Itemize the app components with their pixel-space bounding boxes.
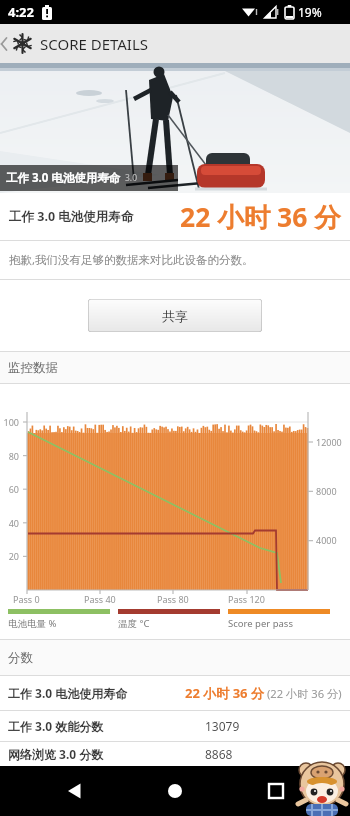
staticText: 共享	[162, 308, 188, 324]
button[interactable]: 工作 3.0 电池使用寿命	[8, 676, 342, 710]
staticText: 22 小时 36 分	[180, 199, 341, 235]
staticText: 温度 °C	[118, 617, 150, 630]
staticText: 工作 3.0 效能分数	[8, 718, 205, 734]
button[interactable]: 共享	[88, 299, 262, 332]
staticText: Pass 40	[84, 593, 116, 605]
staticText: 80	[0, 450, 19, 462]
staticText: 8868	[205, 746, 233, 762]
staticText: Pass 120	[228, 593, 265, 605]
staticText: 4:22	[8, 3, 34, 21]
button[interactable]: 网络浏览 3.0 分数	[8, 742, 342, 765]
staticText: 电池电量 %	[8, 617, 57, 630]
staticText: 60	[0, 483, 19, 495]
staticText: 抱歉,我们没有足够的数据来对比此设备的分数。	[9, 252, 254, 268]
staticText: 工作 3.0 电池使用寿命	[8, 685, 128, 701]
staticText: 网络浏览 3.0 分数	[8, 746, 205, 762]
staticText: 100	[0, 416, 19, 428]
staticText: 12000	[316, 436, 342, 448]
staticText: Score per pass	[228, 617, 293, 630]
staticText: 3.0	[125, 172, 138, 184]
button[interactable]	[12, 33, 33, 54]
staticText: 工作 3.0 电池使用寿命	[9, 208, 134, 225]
staticText: 22 小时 36 分	[185, 684, 264, 702]
button[interactable]: 工作 3.0 效能分数	[8, 711, 342, 741]
staticText: 监控数据	[8, 360, 58, 376]
staticText: 8000	[316, 485, 337, 497]
button[interactable]	[225, 766, 326, 816]
staticText: 13079	[205, 718, 240, 734]
staticText: Pass 80	[157, 593, 189, 605]
button[interactable]	[124, 766, 225, 816]
staticText: 工作 3.0 电池使用寿命	[6, 170, 121, 186]
button[interactable]	[24, 766, 124, 816]
staticText: SCORE DETAILS	[40, 34, 149, 54]
staticText: 分数	[8, 650, 33, 666]
staticText: (22 小时 36 分)	[267, 686, 342, 701]
staticText: Pass 0	[13, 593, 40, 605]
staticText: 4000	[316, 534, 337, 546]
staticText: 40	[0, 517, 19, 529]
staticText: 19%	[298, 4, 322, 20]
staticText: 20	[0, 550, 19, 562]
